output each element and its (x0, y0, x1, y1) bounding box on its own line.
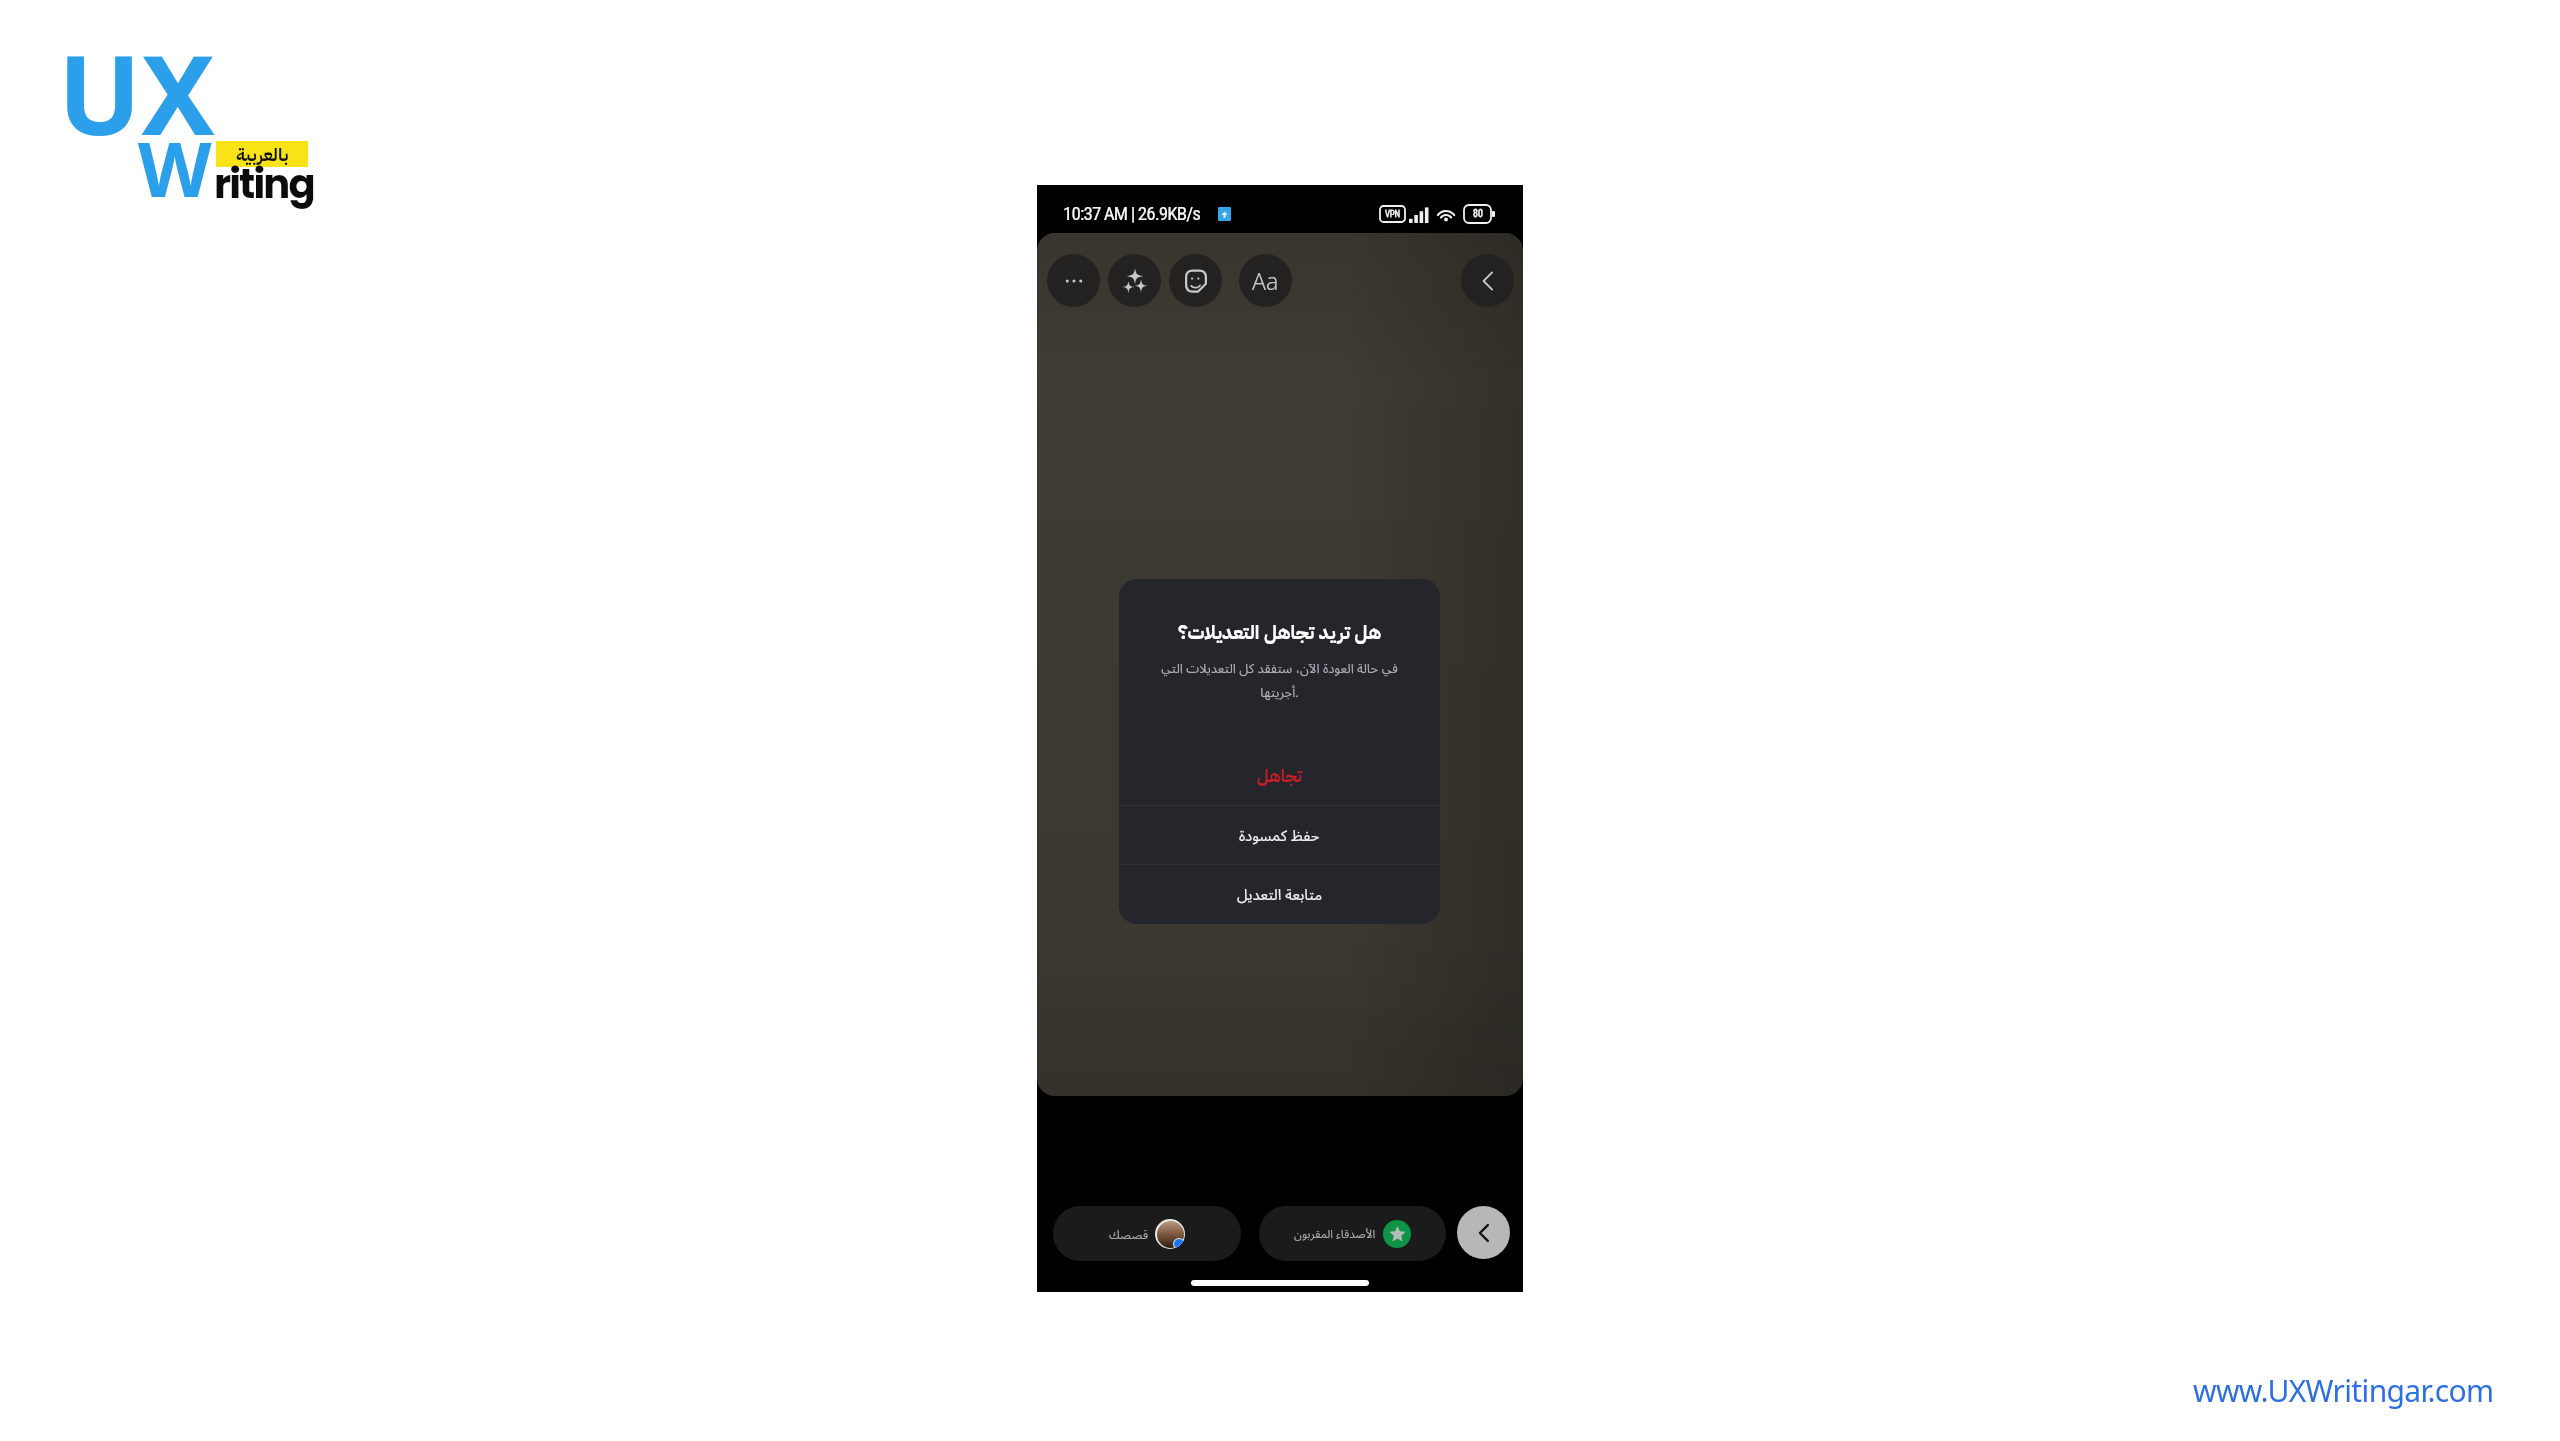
button[interactable]: حفظ كمسودة (1119, 805, 1440, 864)
staticText: W (138, 116, 212, 220)
staticText: VPN (1385, 209, 1400, 220)
staticText: تجاهل (1257, 764, 1302, 789)
button[interactable]: Back (1461, 254, 1514, 307)
staticText: Aa (1252, 265, 1279, 296)
button[interactable]: More options (1047, 254, 1100, 307)
button[interactable]: متابعة التعديل (1119, 864, 1440, 924)
staticText: 10:37 AM | 26.9KB/s (1063, 202, 1201, 224)
staticText: 80 (1473, 208, 1483, 220)
button[interactable]: Effects (1108, 254, 1161, 307)
staticText: بالعربية (236, 141, 289, 167)
staticText: حفظ كمسودة (1239, 825, 1320, 845)
staticText: riting (214, 156, 314, 212)
staticText: في حالة العودة الآن، ستفقد كل التعديلات … (1153, 659, 1406, 701)
button[interactable]: Stickers (1169, 254, 1222, 307)
staticText: الأصدقاء المقربون (1294, 1226, 1376, 1242)
staticText: UX (58, 17, 215, 167)
button[interactable]: تجاهل (1119, 747, 1440, 805)
staticText: هل تريد تجاهل التعديلات؟ (1119, 618, 1440, 647)
staticText: قصصك (1109, 1226, 1149, 1242)
button[interactable]: الأصدقاء المقربون (1259, 1206, 1446, 1261)
button[interactable]: Next (1457, 1206, 1510, 1259)
button[interactable]: Text (1239, 254, 1292, 307)
button[interactable]: قصصك (1053, 1206, 1241, 1261)
staticText: www.UXWritingar.com (2193, 1370, 2494, 1411)
staticText: متابعة التعديل (1237, 884, 1323, 904)
